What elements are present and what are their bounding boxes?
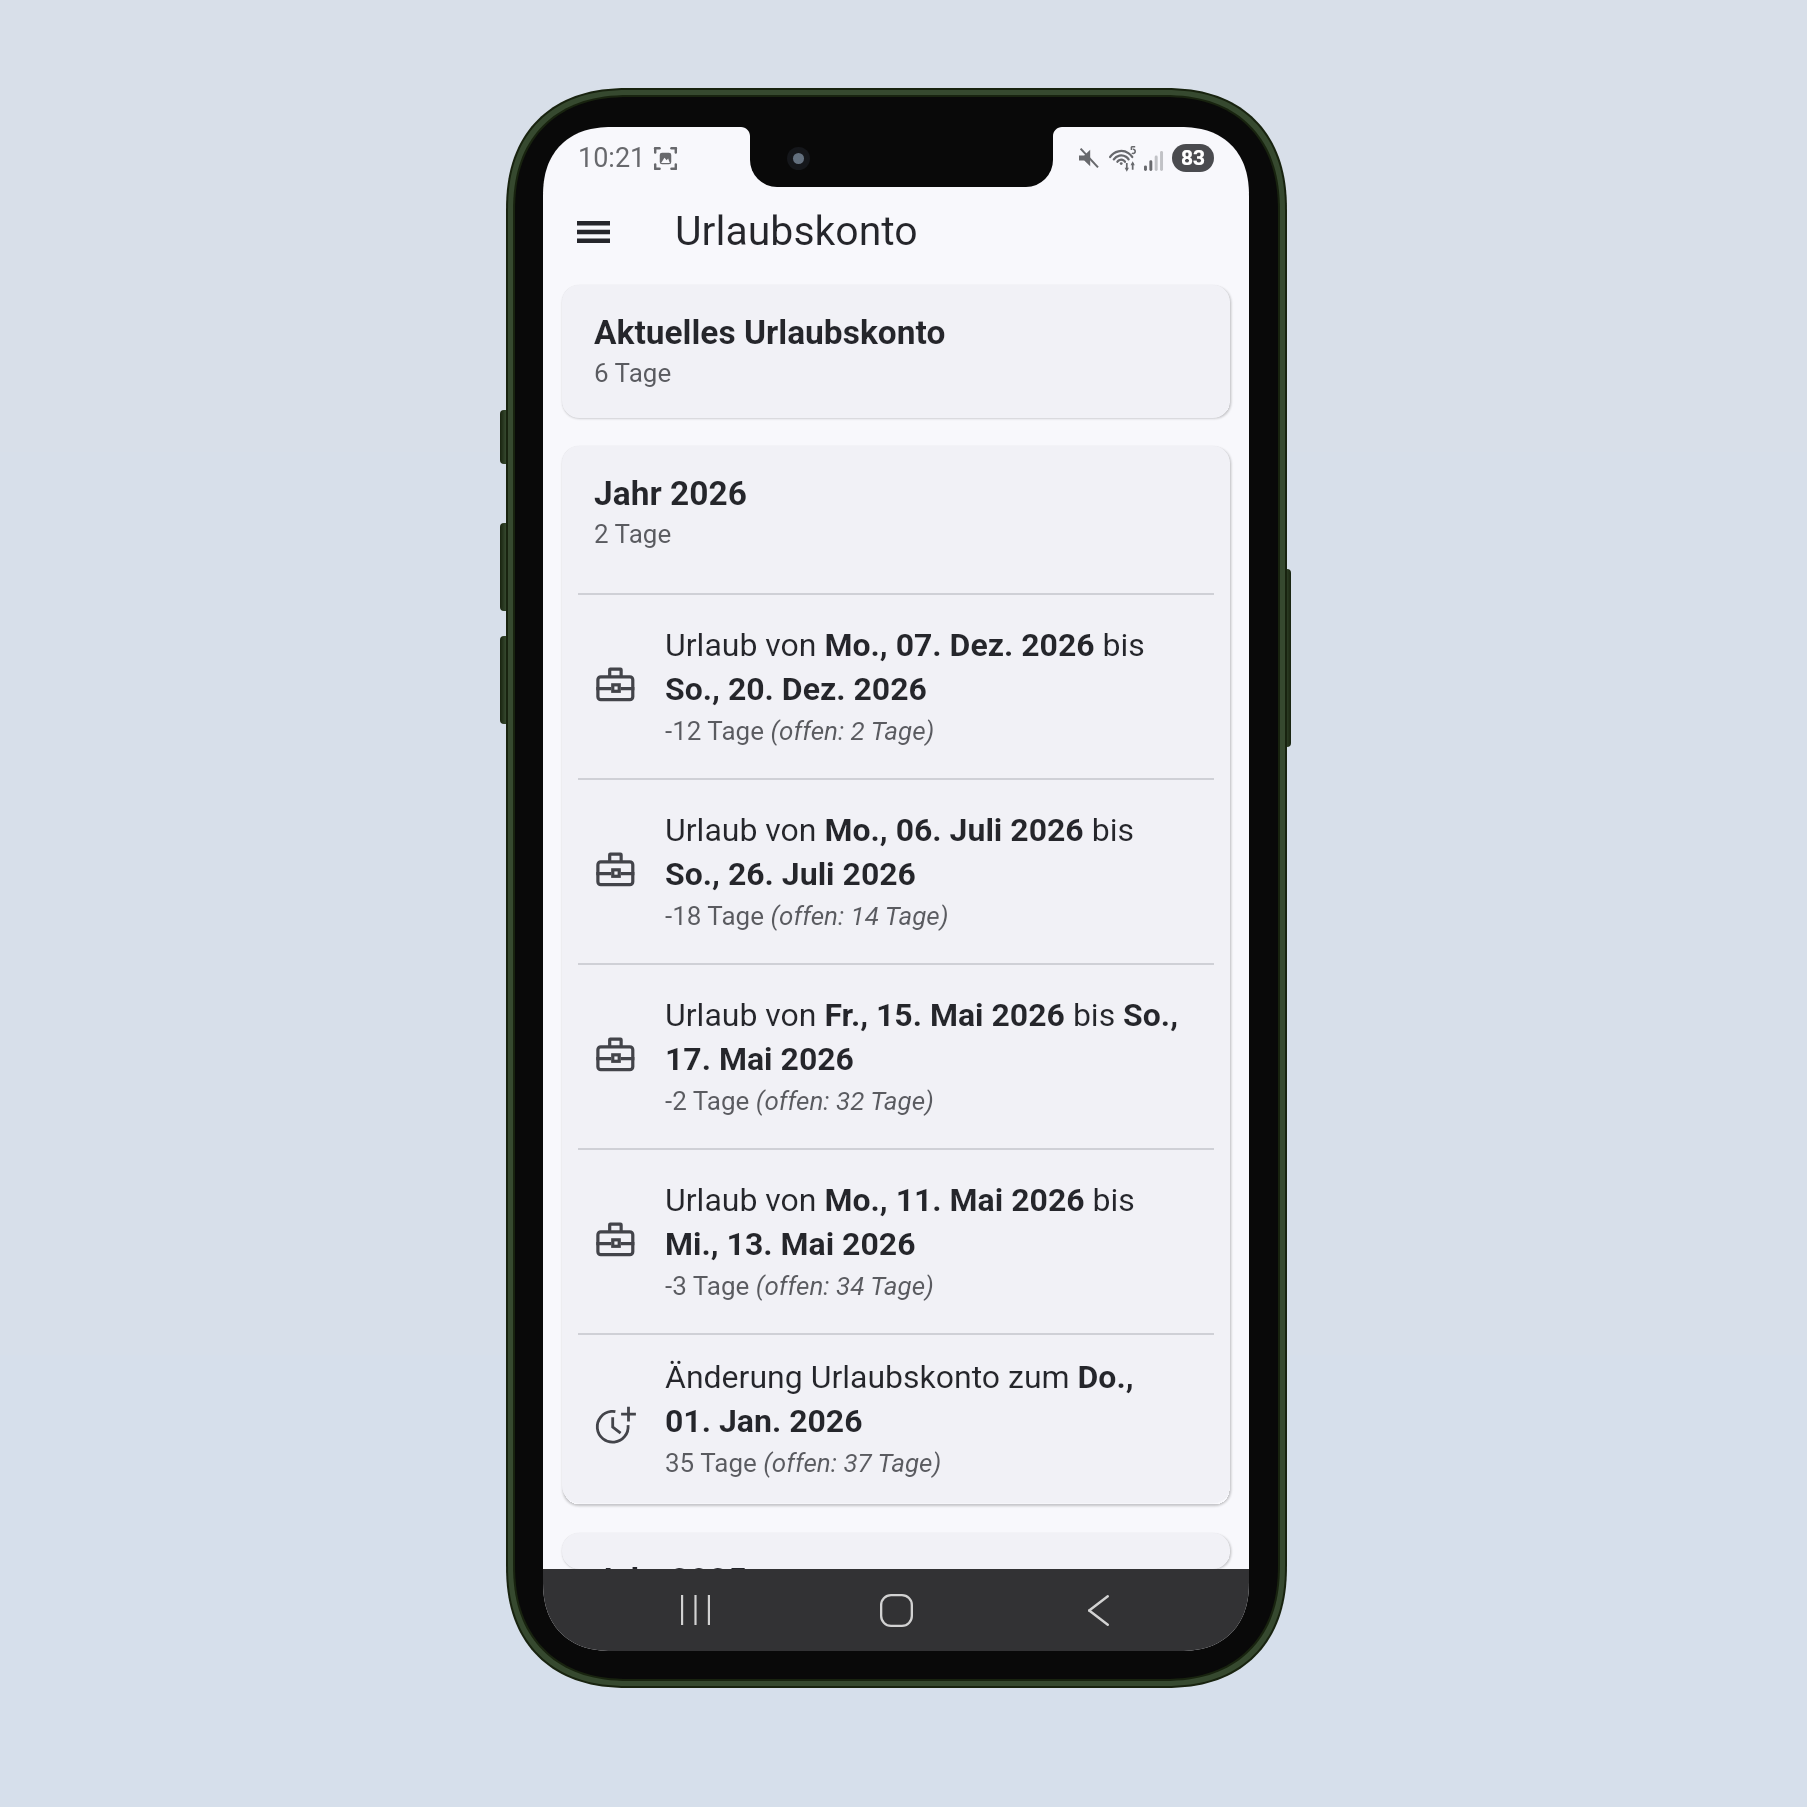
- button[interactable]: Menu: [557, 196, 629, 268]
- button[interactable]: Änderung Urlaubskonto zum Do., 01. Jan. …: [562, 1335, 1230, 1503]
- staticText: 2 Tage: [594, 517, 672, 550]
- button[interactable]: Urlaub von Mo., 06. Juli 2026 bis So., 2…: [562, 780, 1230, 963]
- staticText: Jahr 2025: [594, 1560, 747, 1569]
- staticText: Änderung Urlaubskonto zum Do., 01. Jan. …: [665, 1353, 1187, 1441]
- staticText: -12 Tage (offen: 2 Tage): [665, 705, 935, 749]
- staticText: 83: [1181, 146, 1206, 171]
- staticText: Urlaubskonto: [675, 207, 918, 255]
- staticText: 35 Tage (offen: 37 Tage): [665, 1437, 942, 1481]
- staticText: -2 Tage (offen: 32 Tage): [665, 1075, 934, 1119]
- staticText: Aktuelles Urlaubskonto: [594, 312, 946, 352]
- button[interactable]: Urlaub von Mo., 07. Dez. 2026 bis So., 2…: [562, 595, 1230, 778]
- staticText: -18 Tage (offen: 14 Tage): [665, 890, 949, 934]
- button[interactable]: Back: [1048, 1569, 1148, 1651]
- button[interactable]: Recent apps: [645, 1569, 745, 1651]
- staticText: Urlaub von Fr., 15. Mai 2026 bis So., 17…: [665, 991, 1187, 1079]
- staticText: Urlaub von Mo., 06. Juli 2026 bis So., 2…: [665, 806, 1187, 894]
- button[interactable]: Urlaub von Mo., 11. Mai 2026 bis Mi., 13…: [562, 1150, 1230, 1333]
- staticText: Jahr 2026: [594, 473, 747, 513]
- staticText: Urlaub von Mo., 11. Mai 2026 bis Mi., 13…: [665, 1176, 1187, 1264]
- staticText: Urlaub von Mo., 07. Dez. 2026 bis So., 2…: [665, 621, 1187, 709]
- staticText: 6 Tage: [594, 356, 672, 389]
- staticText: -3 Tage (offen: 34 Tage): [665, 1260, 934, 1304]
- button[interactable]: Aktuelles Urlaubskonto: [562, 285, 1230, 418]
- button[interactable]: Home: [846, 1569, 946, 1651]
- button[interactable]: Urlaub von Fr., 15. Mai 2026 bis So., 17…: [562, 965, 1230, 1148]
- button[interactable]: Jahr 2025: [562, 1533, 1230, 1569]
- staticText: 10:21: [578, 142, 646, 174]
